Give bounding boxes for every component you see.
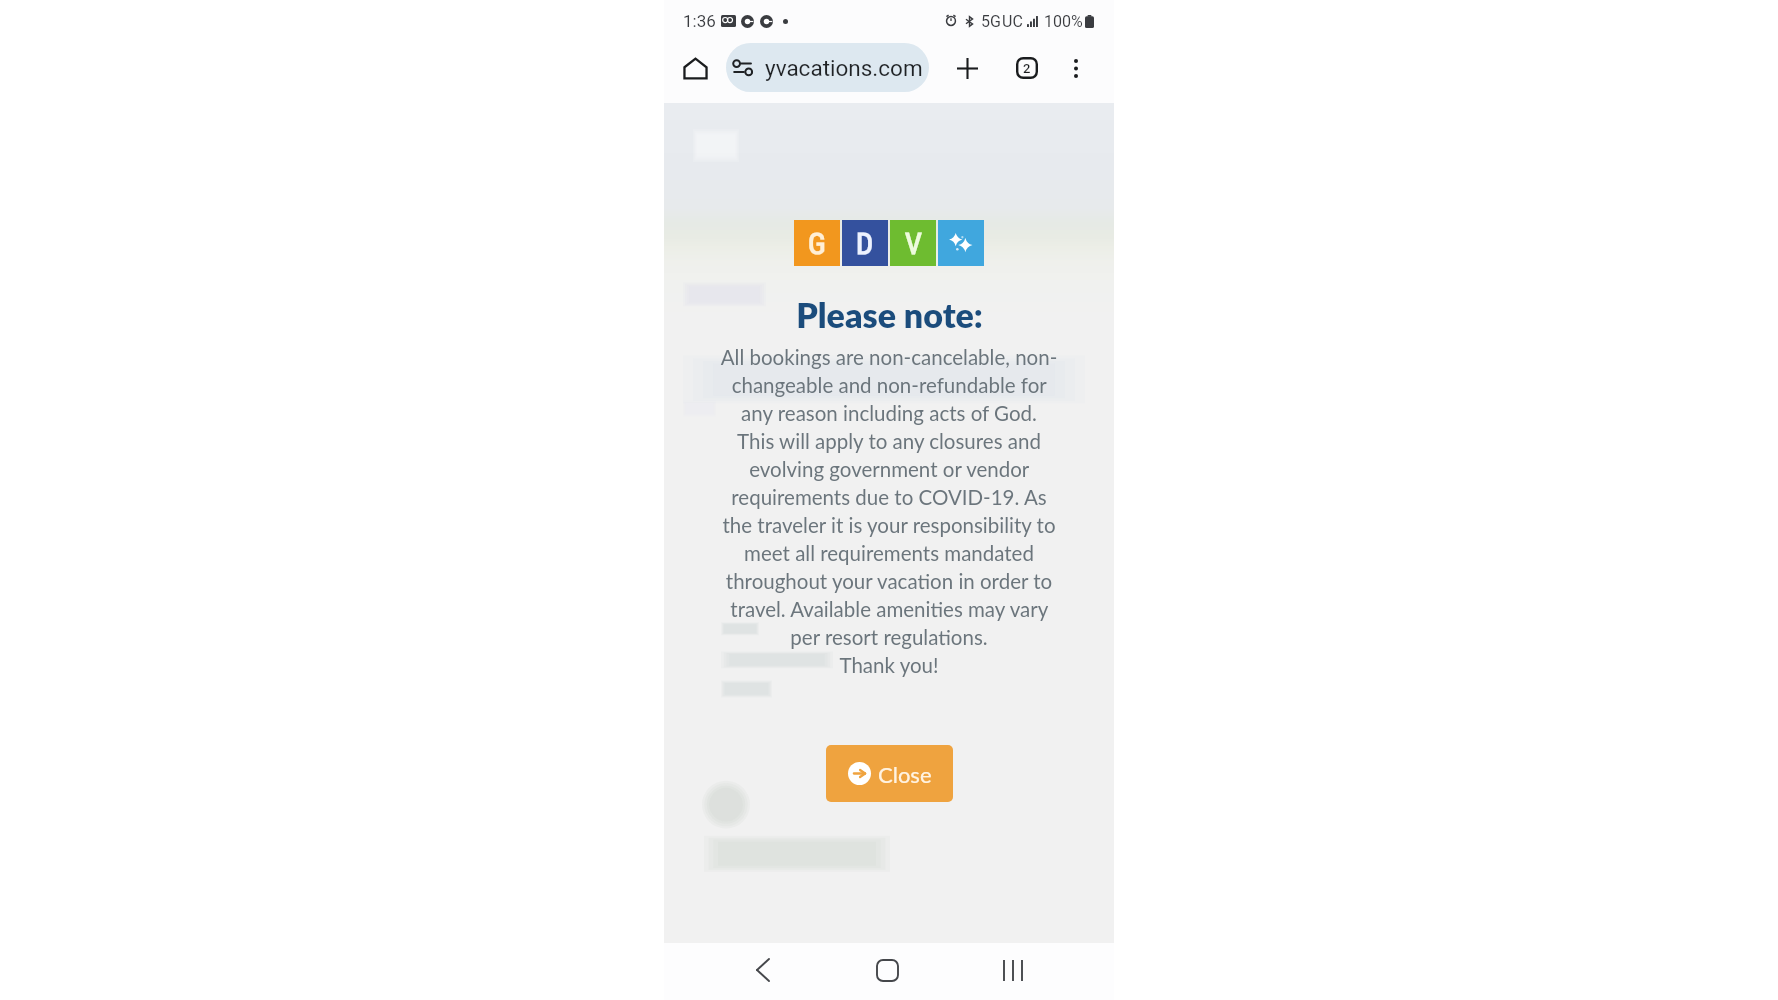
button[interactable]: yvacations.com: [726, 43, 929, 92]
button[interactable]: New tab: [947, 48, 987, 88]
staticText: 1:36: [683, 11, 716, 31]
staticText: D: [856, 226, 874, 261]
staticText: V: [905, 226, 922, 261]
staticText: Close: [878, 761, 932, 787]
button[interactable]: Close: [826, 745, 953, 802]
staticText: Please note:: [796, 294, 983, 335]
button[interactable]: Recent apps: [985, 943, 1041, 997]
button[interactable]: Home: [859, 943, 915, 997]
staticText: 5G: [981, 12, 1001, 31]
button[interactable]: More options: [1056, 48, 1096, 88]
staticText: G: [808, 226, 826, 261]
staticText: All bookings are non-cancelable, non-cha…: [718, 345, 1060, 677]
button[interactable]: Back: [735, 943, 791, 997]
staticText: 100%: [1044, 12, 1083, 31]
staticText: UC: [1002, 12, 1023, 31]
button[interactable]: Tabs: [1007, 48, 1047, 88]
staticText: yvacations.com: [765, 55, 923, 81]
button[interactable]: Home: [675, 48, 715, 88]
staticText: 2: [1023, 61, 1031, 76]
